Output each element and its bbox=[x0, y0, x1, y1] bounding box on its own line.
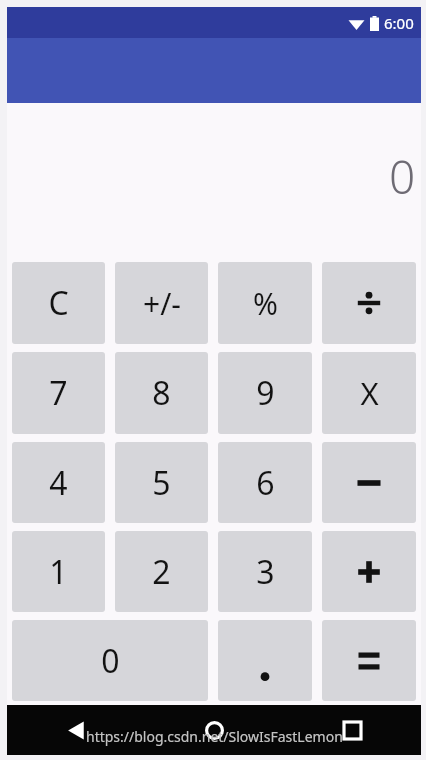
staticText: 7 bbox=[49, 371, 68, 415]
button[interactable]: Recent apps bbox=[329, 707, 375, 753]
button[interactable]: 5 bbox=[115, 442, 208, 523]
button[interactable]: C bbox=[12, 262, 105, 344]
button[interactable]: 4 bbox=[12, 442, 105, 523]
button[interactable]: 6 bbox=[218, 442, 312, 523]
button[interactable]: X bbox=[322, 352, 416, 434]
button[interactable]: 0 bbox=[12, 620, 208, 701]
button[interactable]: 3 bbox=[218, 531, 312, 612]
button[interactable]: Minus bbox=[322, 442, 416, 523]
staticText: 8 bbox=[152, 371, 171, 415]
staticText: 0 bbox=[101, 639, 120, 683]
button[interactable]: Plus bbox=[322, 531, 416, 612]
button[interactable]: % bbox=[218, 262, 312, 344]
staticText: 2 bbox=[152, 550, 171, 594]
staticText: +/- bbox=[143, 283, 181, 324]
button[interactable]: 8 bbox=[115, 352, 208, 434]
staticText: 4 bbox=[49, 461, 68, 505]
button[interactable]: +/- bbox=[115, 262, 208, 344]
button[interactable]: Home bbox=[191, 707, 237, 753]
staticText: https://blog.csdn.net/SlowIsFastLemon bbox=[86, 727, 343, 746]
button[interactable]: 2 bbox=[115, 531, 208, 612]
staticText: 6 bbox=[256, 461, 275, 505]
staticText: 3 bbox=[256, 550, 275, 594]
staticText: 6:00 bbox=[384, 13, 414, 33]
staticText: C bbox=[48, 281, 69, 325]
staticText: X bbox=[360, 372, 379, 414]
staticText: 1 bbox=[49, 550, 68, 594]
staticText: 9 bbox=[256, 371, 275, 415]
button[interactable]: Equals bbox=[322, 620, 416, 701]
button[interactable]: 7 bbox=[12, 352, 105, 434]
staticText: % bbox=[253, 283, 278, 324]
button[interactable]: 1 bbox=[12, 531, 105, 612]
staticText: 5 bbox=[152, 461, 171, 505]
button[interactable]: 9 bbox=[218, 352, 312, 434]
staticText: 0 bbox=[389, 145, 416, 208]
button[interactable]: Divide bbox=[322, 262, 416, 344]
button[interactable]: Decimal point bbox=[218, 620, 312, 701]
button[interactable]: Back bbox=[53, 707, 99, 753]
